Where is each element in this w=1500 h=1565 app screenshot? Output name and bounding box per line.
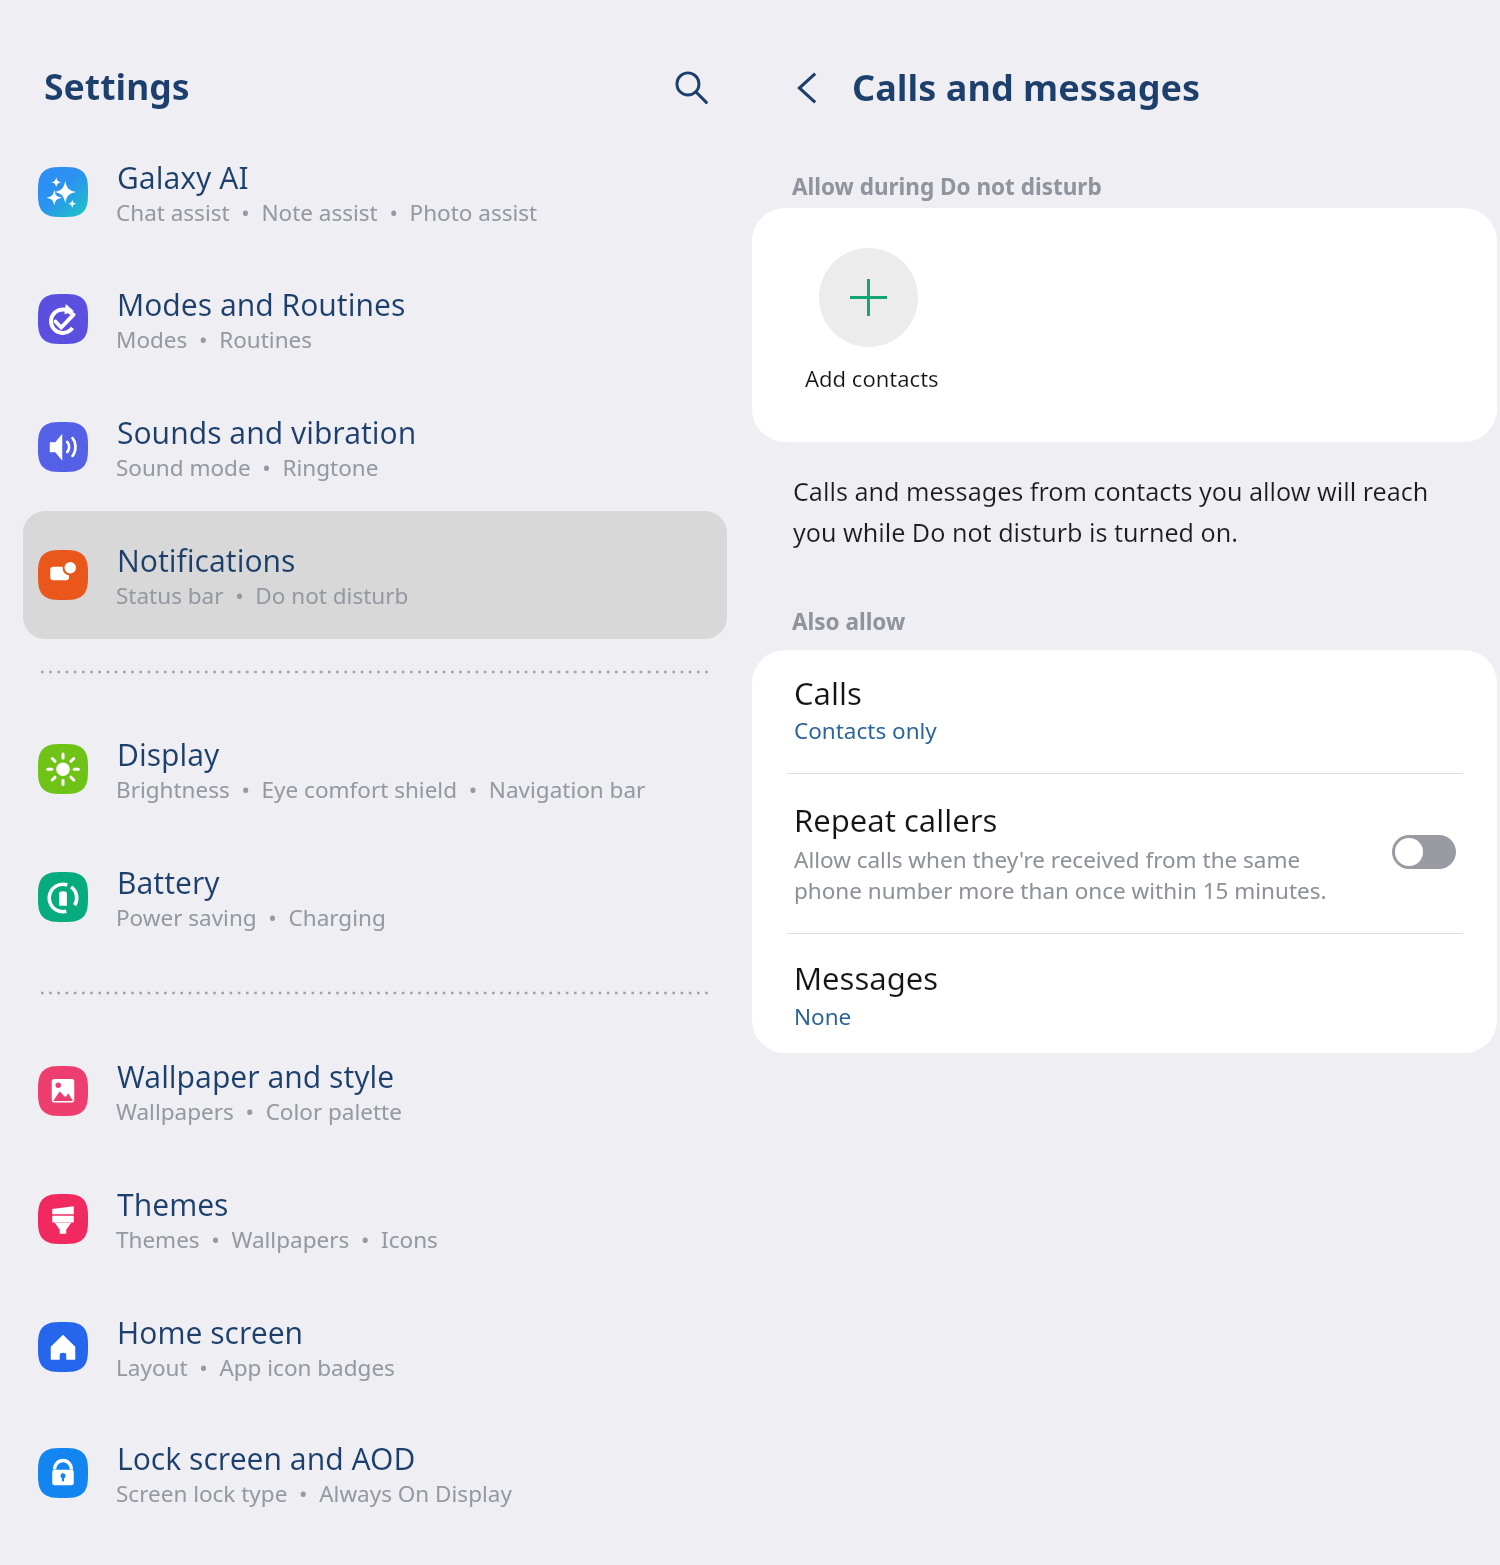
staticText: Layout • App icon badges <box>116 1352 395 1383</box>
staticText: Lock screen and AOD <box>117 1438 416 1479</box>
staticText: Add contacts <box>805 363 939 393</box>
staticText: Calls and messages <box>852 62 1201 111</box>
staticText: Status bar • Do not disturb <box>116 580 409 611</box>
button[interactable]: Home screen <box>23 1283 727 1411</box>
staticText: Allow during Do not disturb <box>792 171 1102 202</box>
staticText: None <box>794 1001 852 1032</box>
button[interactable]: Messages <box>752 934 1497 1053</box>
button[interactable]: Add contacts <box>805 240 1005 410</box>
staticText: Themes • Wallpapers • Icons <box>116 1224 438 1255</box>
button[interactable]: Display <box>23 705 727 833</box>
staticText: Repeat callers <box>794 799 998 841</box>
button[interactable]: Galaxy AI <box>23 128 727 256</box>
staticText: Also allow <box>792 606 906 637</box>
button[interactable]: Wallpaper and style <box>23 1027 727 1155</box>
staticText: Calls <box>794 672 862 714</box>
staticText: Notifications <box>117 540 296 581</box>
button[interactable]: Back <box>772 52 844 124</box>
button[interactable]: Notifications <box>23 511 727 639</box>
staticText: Wallpaper and style <box>117 1056 395 1097</box>
button[interactable]: Repeat callers <box>752 774 1497 933</box>
staticText: Calls and messages from contacts you all… <box>793 474 1429 549</box>
button[interactable]: Battery <box>23 833 727 961</box>
staticText: Galaxy AI <box>117 157 249 198</box>
staticText: Wallpapers • Color palette <box>116 1096 402 1127</box>
staticText: Battery <box>117 862 220 903</box>
staticText: Sound mode • Ringtone <box>116 452 379 483</box>
button[interactable]: Search <box>655 51 727 123</box>
staticText: Messages <box>794 957 939 999</box>
staticText: Themes <box>117 1184 229 1225</box>
button[interactable]: Modes and Routines <box>23 255 727 383</box>
button[interactable]: Themes <box>23 1155 727 1283</box>
staticText: Modes and Routines <box>117 284 406 325</box>
staticText: Display <box>117 734 220 775</box>
staticText: Allow calls when they're received from t… <box>794 844 1327 906</box>
button[interactable]: Calls <box>752 650 1497 773</box>
staticText: Brightness • Eye comfort shield • Naviga… <box>116 774 646 805</box>
button[interactable]: Sounds and vibration <box>23 383 727 511</box>
staticText: Screen lock type • Always On Display <box>116 1478 512 1509</box>
staticText: Settings <box>44 62 190 110</box>
staticText: Chat assist • Note assist • Photo assist <box>116 197 538 228</box>
staticText: Contacts only <box>794 715 937 746</box>
staticText: Home screen <box>117 1312 304 1353</box>
button[interactable]: Repeat callers toggle <box>1392 835 1456 869</box>
button[interactable]: Lock screen and AOD <box>23 1409 727 1537</box>
staticText: Power saving • Charging <box>116 902 386 933</box>
staticText: Modes • Routines <box>116 324 312 355</box>
staticText: Sounds and vibration <box>117 412 417 453</box>
